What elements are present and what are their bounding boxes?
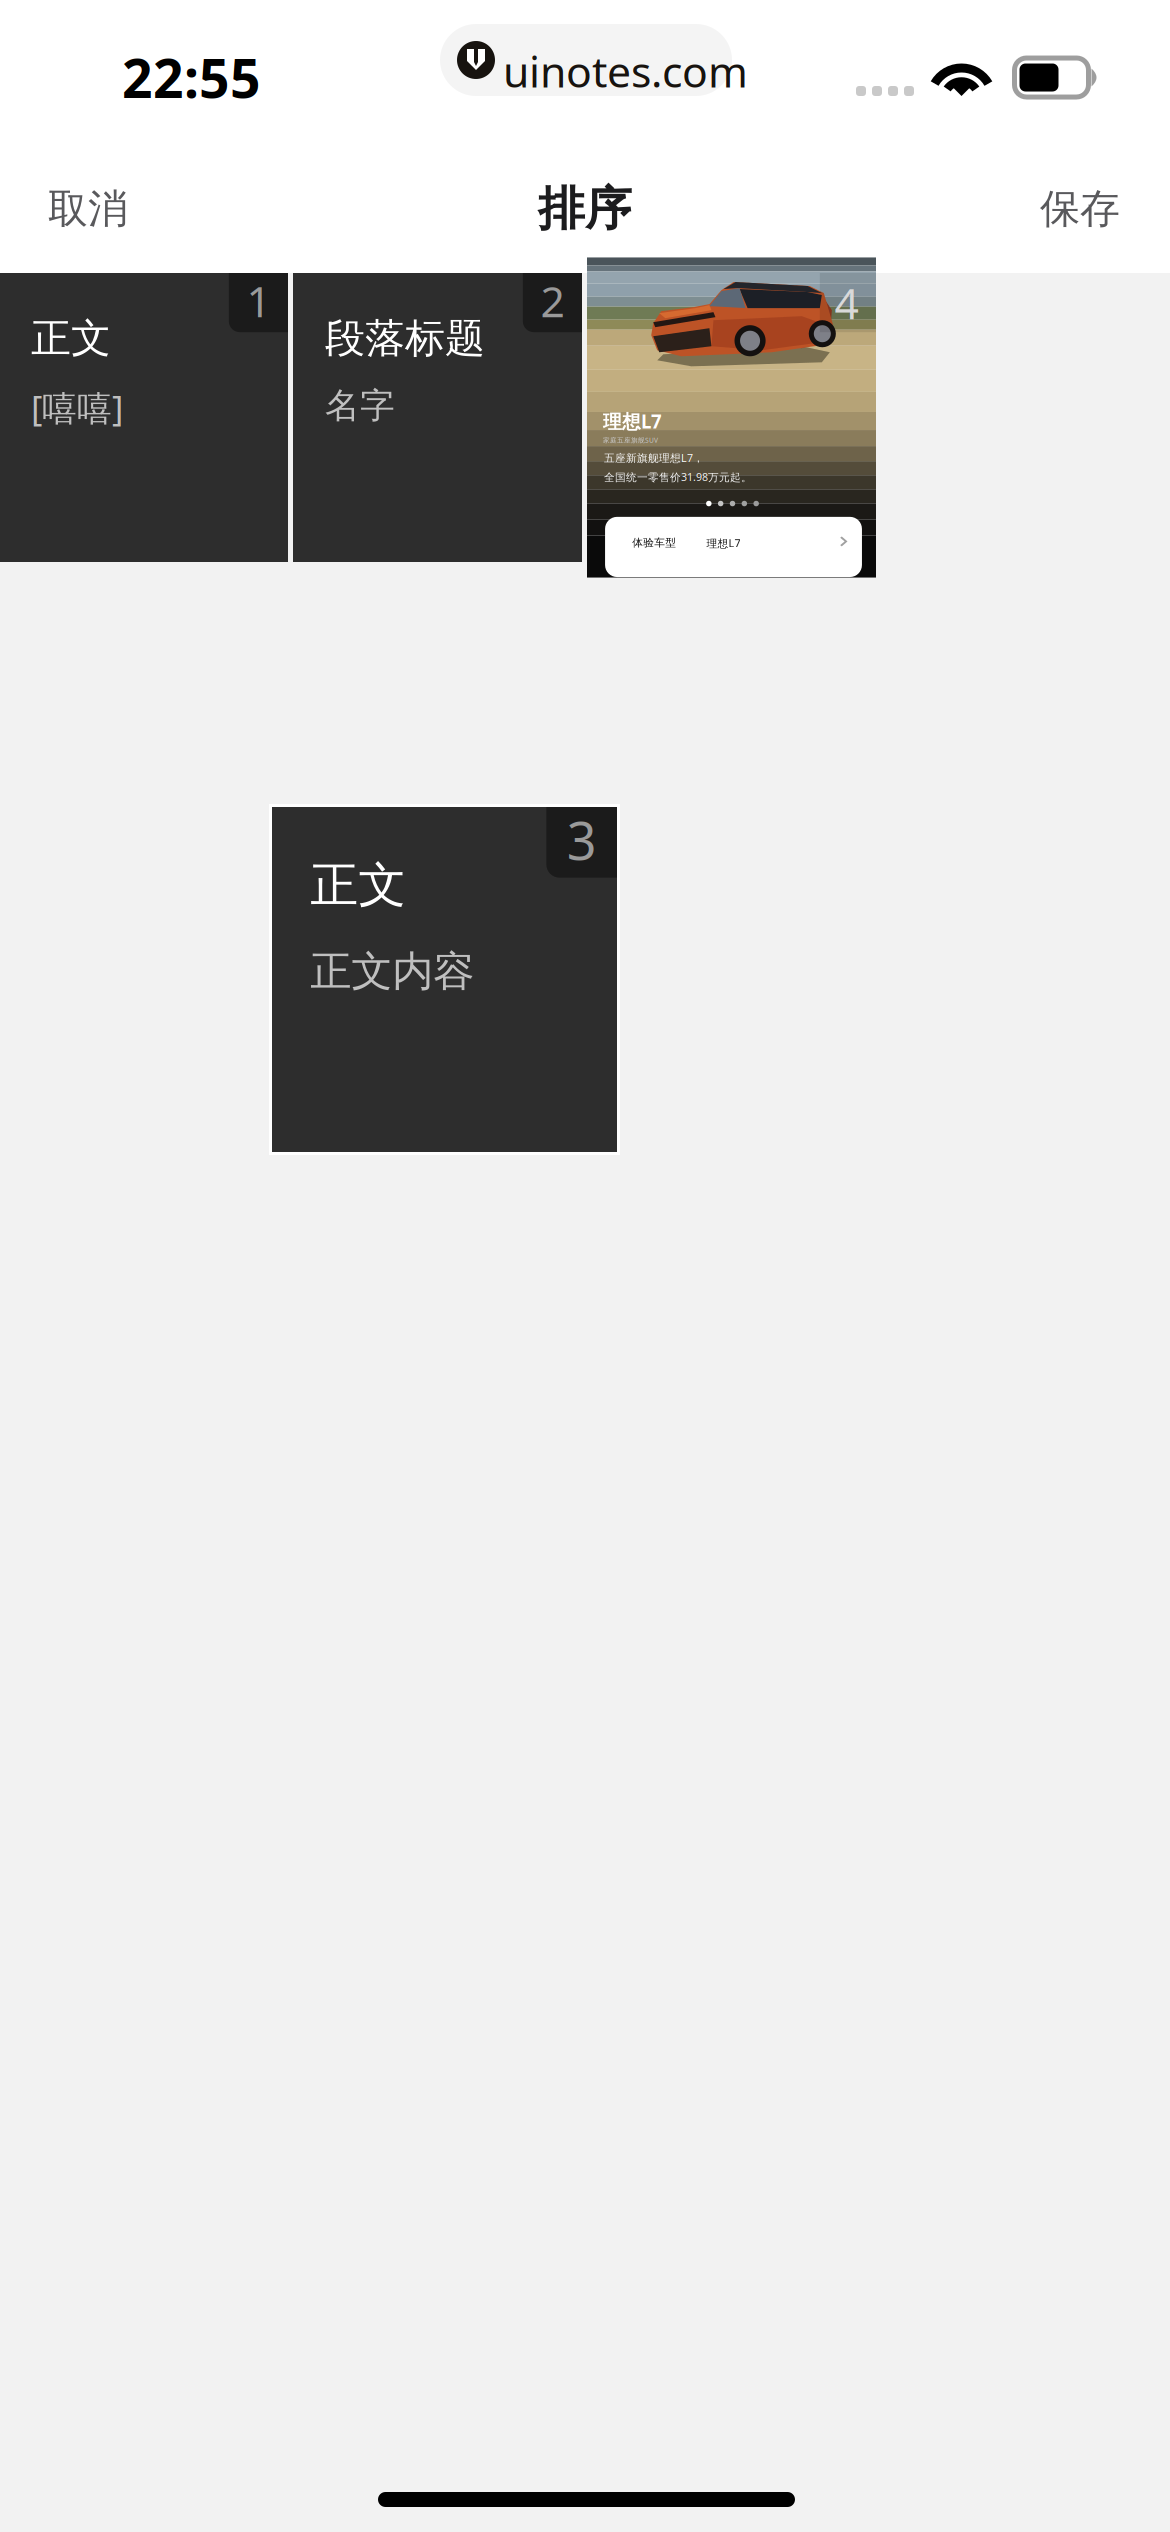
- button[interactable]: 保存: [1015, 166, 1145, 252]
- staticText: 家庭五座旗舰SUV: [603, 436, 658, 445]
- staticText: 取消: [48, 184, 128, 234]
- staticText: 排序: [538, 180, 632, 238]
- staticText: 段落标题: [325, 313, 485, 363]
- button[interactable]: 取消: [23, 166, 153, 252]
- staticText: 4: [834, 273, 858, 332]
- staticText: 体验车型: [632, 536, 676, 549]
- button[interactable]: 正文: [272, 807, 617, 1152]
- staticText: 正文内容: [310, 945, 474, 998]
- staticText: [嘻嘻]: [31, 384, 123, 431]
- staticText: 保存: [1040, 184, 1120, 234]
- staticText: 1: [246, 271, 270, 330]
- staticText: 五座新旗舰理想L7，: [604, 451, 704, 465]
- button[interactable]: 理想L7: [587, 273, 876, 562]
- staticText: 3: [567, 804, 597, 875]
- staticText: 正文: [31, 313, 111, 363]
- staticText: 全国统一零售价31.98万元起。: [604, 470, 752, 484]
- staticText: 22:55: [122, 41, 261, 114]
- staticText: 理想L7: [706, 536, 740, 550]
- staticText: 名字: [325, 384, 395, 428]
- staticText: 理想L7: [603, 408, 662, 434]
- staticText: uinotes.com: [503, 42, 748, 100]
- staticText: 2: [540, 271, 564, 330]
- staticText: 正文: [310, 855, 406, 915]
- button[interactable]: 段落标题: [293, 273, 582, 562]
- button[interactable]: 正文: [0, 273, 288, 562]
